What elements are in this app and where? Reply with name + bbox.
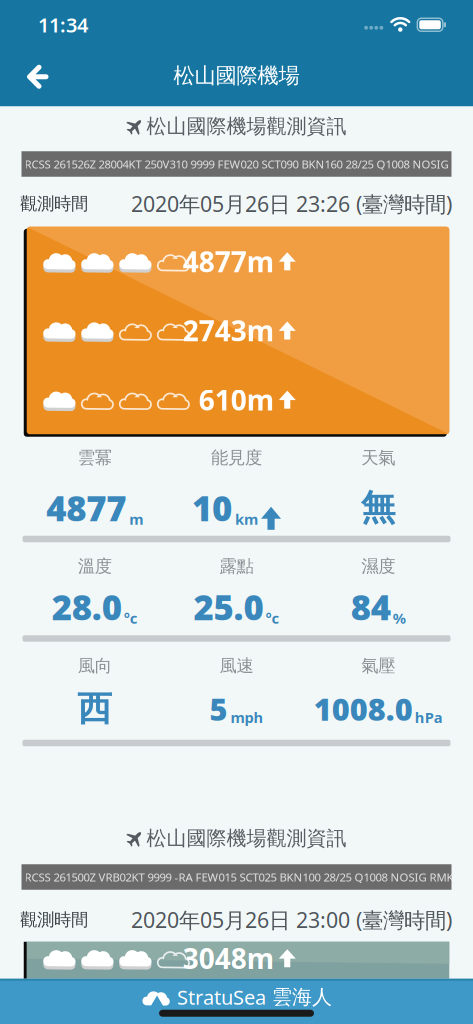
staticText: 無 <box>361 486 396 529</box>
staticText: 能見度 <box>211 447 262 468</box>
staticText: 雲冪 <box>78 447 112 468</box>
staticText: 天氣 <box>361 447 395 468</box>
staticText: 風向 <box>78 655 112 676</box>
staticText: 84 <box>351 584 391 630</box>
staticText: 2743m <box>183 312 274 349</box>
staticText: 5 <box>209 688 227 729</box>
staticText: 11:34 <box>38 11 88 38</box>
staticText: 西 <box>77 687 112 730</box>
staticText: 2020年05月26日 23:00 (臺灣時間) <box>131 906 452 934</box>
staticText: 610m <box>199 381 274 418</box>
staticText: 松山國際機場觀測資訊 <box>146 114 346 139</box>
staticText: hPa <box>415 708 443 727</box>
staticText: 觀測時間 <box>20 909 88 930</box>
staticText: 2020年05月26日 23:26 (臺灣時間) <box>131 190 452 218</box>
staticText: 4877m <box>183 243 274 280</box>
staticText: m <box>129 509 143 529</box>
staticText: RCSS 261500Z VRB02KT 9999 -RA FEW015 SCT… <box>24 869 473 885</box>
staticText: °c <box>124 608 138 628</box>
staticText: 溫度 <box>78 556 112 577</box>
staticText: mph <box>230 708 263 727</box>
staticText: km <box>235 509 258 529</box>
staticText: 1008.0 <box>314 688 413 729</box>
staticText: 氣壓 <box>361 655 395 676</box>
staticText: 10 <box>192 485 232 531</box>
staticText: 28.0 <box>52 584 122 630</box>
staticText: StratuSea <box>177 984 266 1010</box>
staticText: 雲海人 <box>272 985 332 1009</box>
staticText: 松山國際機場觀測資訊 <box>146 826 346 851</box>
staticText: 4877 <box>46 485 126 531</box>
staticText: 25.0 <box>193 584 263 630</box>
button[interactable]: StratuSea 雲海人 <box>141 979 332 1010</box>
staticText: 觀測時間 <box>20 193 88 214</box>
staticText: RCSS 261526Z 28004KT 250V310 9999 FEW020… <box>24 156 473 172</box>
staticText: 露點 <box>219 556 253 577</box>
staticText: 濕度 <box>361 556 395 577</box>
staticText: 松山國際機場 <box>173 63 299 89</box>
staticText: °c <box>265 608 279 628</box>
staticText: 風速 <box>219 655 253 676</box>
button[interactable]: Back <box>0 64 49 88</box>
staticText: 3048m <box>183 940 274 977</box>
staticText: % <box>393 608 406 628</box>
